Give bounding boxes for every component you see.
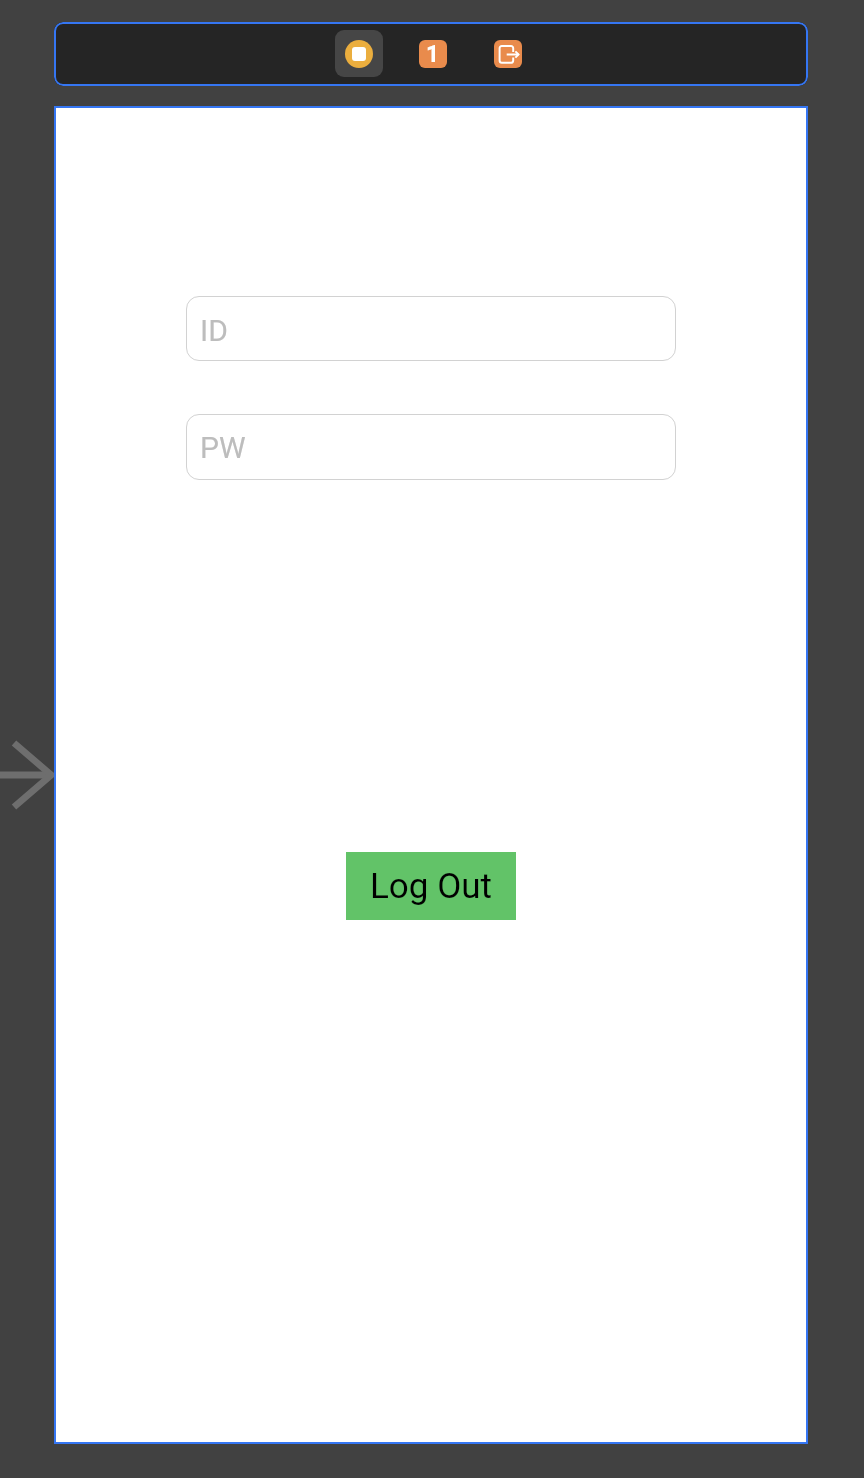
button[interactable]: Log out — [494, 40, 522, 68]
staticText: ID — [200, 313, 228, 348]
button[interactable]: PW — [186, 414, 676, 480]
staticText: Log Out — [370, 866, 492, 907]
button[interactable]: Device 1 — [419, 40, 447, 68]
staticText: 1 — [426, 41, 440, 68]
button[interactable]: Stop — [335, 30, 383, 77]
staticText: PW — [200, 430, 246, 465]
button[interactable]: Log Out — [346, 852, 516, 920]
button[interactable]: ID — [186, 296, 676, 361]
